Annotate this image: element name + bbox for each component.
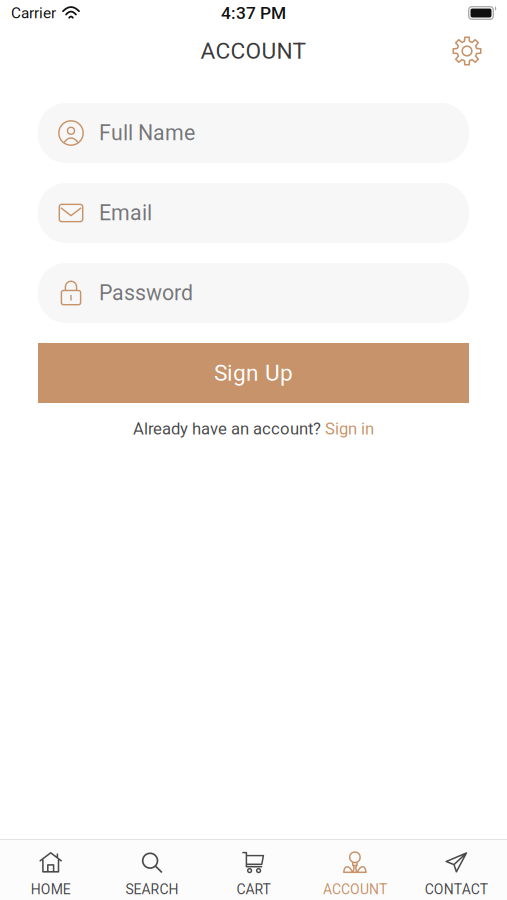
button[interactable]: Settings bbox=[445, 29, 489, 73]
button[interactable]: Sign Up bbox=[38, 343, 469, 403]
staticText: Full Name bbox=[99, 120, 195, 145]
button[interactable]: CART bbox=[203, 838, 304, 900]
button[interactable]: HOME bbox=[0, 838, 101, 900]
staticText: Sign Up bbox=[214, 360, 293, 386]
staticText: Already have an account? bbox=[133, 419, 321, 438]
button[interactable]: Sign in bbox=[321, 419, 374, 438]
staticText: CONTACT bbox=[425, 881, 488, 898]
staticText: HOME bbox=[31, 881, 71, 898]
staticText: 4:37 PM bbox=[221, 3, 286, 23]
button[interactable]: Email bbox=[38, 183, 469, 243]
button[interactable]: ACCOUNT bbox=[304, 838, 406, 900]
staticText: Password bbox=[99, 280, 193, 305]
staticText: ACCOUNT bbox=[323, 881, 387, 898]
staticText: Email bbox=[99, 200, 152, 225]
button[interactable]: CONTACT bbox=[406, 838, 507, 900]
button[interactable]: Password bbox=[38, 263, 469, 323]
staticText: ACCOUNT bbox=[200, 38, 306, 64]
button[interactable]: SEARCH bbox=[101, 838, 203, 900]
button[interactable]: Full Name bbox=[38, 103, 469, 163]
staticText: SEARCH bbox=[126, 881, 179, 898]
staticText: CART bbox=[236, 881, 270, 898]
staticText: Carrier bbox=[11, 4, 56, 22]
staticText: Sign in bbox=[321, 419, 374, 438]
